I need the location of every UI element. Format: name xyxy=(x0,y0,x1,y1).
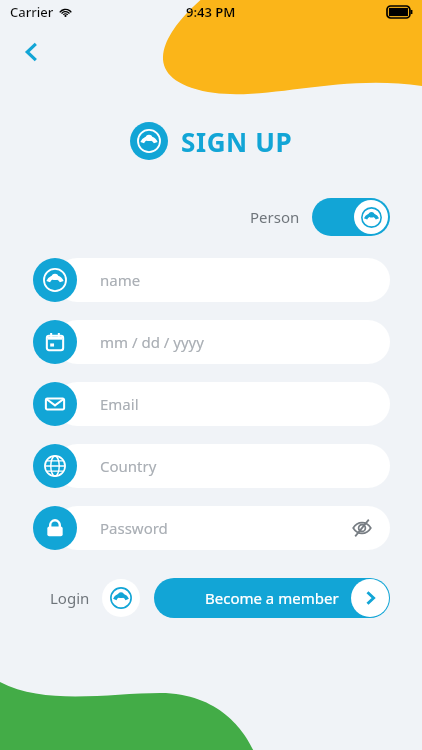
staticText: Person xyxy=(250,207,300,227)
button[interactable]: Login xyxy=(50,579,140,617)
staticText: Carrier xyxy=(10,3,54,21)
staticText: name xyxy=(100,270,141,290)
staticText: Email xyxy=(100,394,139,414)
staticText: Password xyxy=(100,518,168,538)
button[interactable]: mm / dd / yyyy xyxy=(55,320,390,364)
staticText: Country xyxy=(100,456,157,476)
staticText: SIGN UP xyxy=(181,124,293,159)
staticText: 9:43 PM xyxy=(186,3,236,21)
staticText: Login xyxy=(50,588,90,608)
button[interactable]: Person toggle xyxy=(312,198,390,236)
staticText: mm / dd / yyyy xyxy=(100,332,204,352)
staticText: Become a member xyxy=(205,588,339,608)
button[interactable]: Password xyxy=(55,506,390,550)
button[interactable]: Become a member xyxy=(154,578,390,618)
button[interactable]: name xyxy=(55,258,390,302)
button[interactable]: Email xyxy=(55,382,390,426)
button[interactable]: Country xyxy=(55,444,390,488)
button[interactable]: Back xyxy=(8,28,56,76)
